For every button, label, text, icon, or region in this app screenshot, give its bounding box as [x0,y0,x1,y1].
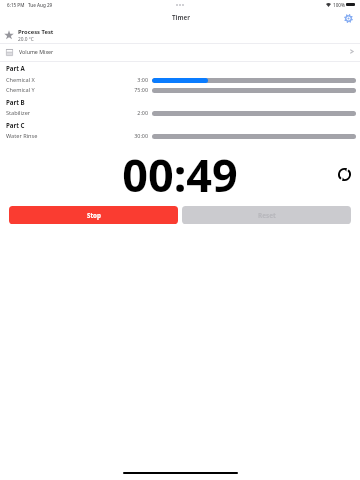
button[interactable]: Volume Mixer [0,43,360,61]
staticText: Chemical X [6,76,35,84]
staticText: Water Rinse [6,132,38,140]
staticText: Chemical Y [6,86,35,94]
staticText: 6:15 PM Tue Aug 29 [7,2,53,8]
staticText: 75:00 [108,86,148,93]
button[interactable]: Loop [334,164,354,184]
staticText: Stabilizer [6,109,31,117]
staticText: 3:00 [108,76,148,83]
button[interactable]: Stop [9,206,178,224]
button[interactable]: Settings [340,10,356,26]
staticText: Volume Mixer [19,48,54,55]
staticText: Part A [6,64,25,72]
staticText: 2:00 [108,109,148,116]
staticText: Part B [6,98,25,106]
staticText: 20.0 °C [18,36,34,43]
staticText: Part C [6,121,25,129]
staticText: 100% [333,2,345,8]
staticText: Timer [172,13,190,21]
staticText: Process Test [18,28,54,36]
staticText: 00:49 [122,144,238,192]
button[interactable]: Process Test [0,26,360,43]
staticText: 30:00 [108,132,148,139]
staticText: Reset [258,211,276,220]
button[interactable]: Reset [182,206,351,224]
staticText: Stop [87,211,101,219]
